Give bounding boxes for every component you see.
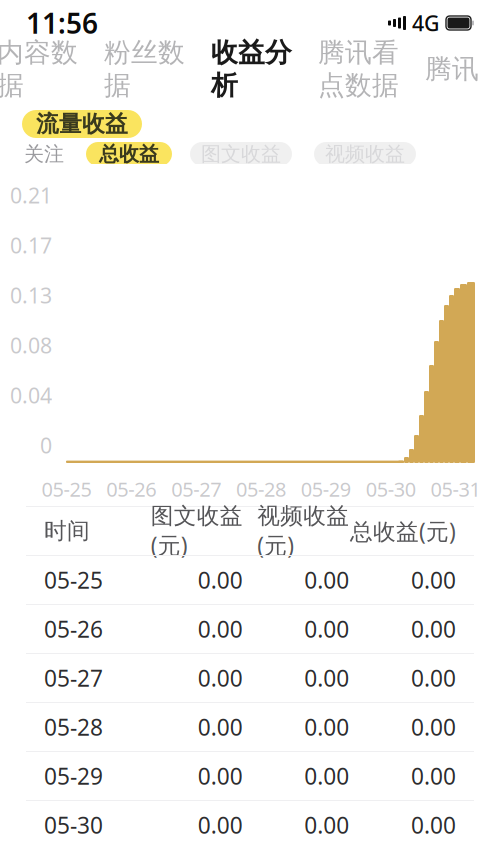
staticText: 0.00 — [411, 565, 456, 595]
staticText: 0.00 — [304, 810, 349, 840]
staticText: 收益分析 — [211, 36, 292, 102]
staticText: 11:56 — [26, 4, 98, 42]
staticText: 4G — [412, 9, 440, 37]
staticText: 0.00 — [304, 761, 349, 791]
button[interactable]: 腾讯看点数据 — [305, 46, 412, 92]
button[interactable]: 总收益 — [86, 142, 172, 166]
staticText: 腾讯 — [425, 53, 479, 85]
staticText: 0.00 — [198, 761, 243, 791]
staticText: 0.00 — [411, 663, 456, 693]
staticText: 0.00 — [198, 614, 243, 644]
staticText: 内容数据 — [0, 36, 78, 102]
button[interactable]: 腾讯 — [412, 46, 492, 92]
staticText: 05-26 — [44, 614, 103, 644]
staticText: 总收益 — [99, 142, 159, 166]
staticText: 视频收益(元) — [257, 502, 349, 560]
button[interactable]: 流量收益 — [22, 110, 142, 138]
staticText: 0.00 — [411, 810, 456, 840]
button[interactable]: 收益分析 — [198, 46, 305, 92]
staticText: 时间 — [44, 517, 90, 545]
button[interactable]: 视频收益 — [314, 142, 416, 166]
staticText: 视频收益 — [325, 142, 405, 166]
staticText: 粉丝数据 — [104, 36, 185, 102]
staticText: 0.08 — [10, 331, 52, 359]
staticText: 0.21 — [10, 181, 52, 209]
button[interactable]: 图文收益 — [190, 142, 292, 166]
staticText: 0.00 — [198, 663, 243, 693]
staticText: 0.00 — [304, 565, 349, 595]
staticText: 流量收益 — [36, 110, 128, 138]
staticText: 05-26 — [106, 476, 156, 502]
button[interactable]: 粉丝数据 — [91, 46, 198, 92]
staticText: 05-28 — [44, 712, 103, 742]
staticText: 05-29 — [301, 476, 351, 502]
staticText: 0.00 — [411, 761, 456, 791]
staticText: 0 — [40, 431, 52, 459]
staticText: 0.00 — [198, 810, 243, 840]
staticText: 0.00 — [304, 712, 349, 742]
staticText: 05-29 — [44, 761, 103, 791]
staticText: 05-25 — [44, 565, 103, 595]
staticText: 0.00 — [304, 663, 349, 693]
staticText: 0.17 — [10, 231, 52, 259]
staticText: 0.04 — [10, 381, 52, 409]
staticText: 总收益(元) — [350, 516, 456, 546]
staticText: 05-25 — [41, 476, 91, 502]
staticText: 05-30 — [44, 810, 103, 840]
staticText: 0.00 — [198, 565, 243, 595]
staticText: 关注 — [24, 142, 64, 166]
staticText: 05-31 — [431, 476, 481, 502]
button[interactable]: 关注 — [24, 142, 64, 166]
staticText: 0.00 — [198, 712, 243, 742]
staticText: 0.13 — [10, 281, 52, 309]
staticText: 05-27 — [171, 476, 221, 502]
staticText: 0.00 — [411, 614, 456, 644]
staticText: 05-27 — [44, 663, 103, 693]
staticText: 0.00 — [411, 712, 456, 742]
staticText: 图文收益 — [201, 142, 281, 166]
staticText: 05-28 — [236, 476, 286, 502]
staticText: 腾讯看点数据 — [318, 36, 399, 102]
staticText: 05-30 — [366, 476, 416, 502]
button[interactable]: 内容数据 — [0, 46, 91, 92]
staticText: 0.00 — [304, 614, 349, 644]
staticText: 图文收益(元) — [151, 502, 243, 560]
